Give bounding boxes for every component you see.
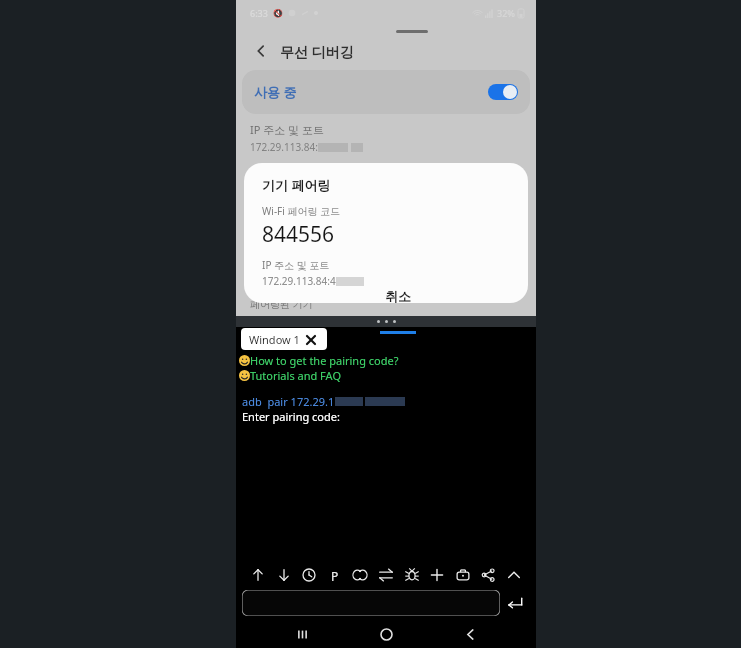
staticText: 32% — [497, 7, 515, 19]
button[interactable]: History — [299, 565, 319, 585]
button[interactable]: Swap — [376, 565, 396, 585]
staticText: IP 주소 및 포트 — [262, 258, 330, 272]
staticText: P — [331, 568, 339, 582]
staticText: 172.29.113.84:4 — [262, 274, 336, 288]
staticText: 사용 중 — [254, 83, 297, 101]
staticText: How to get the pairing code? — [250, 353, 399, 368]
staticText: Window 1 — [249, 332, 300, 347]
staticText: 취소 — [385, 288, 411, 303]
button[interactable]: Paste — [325, 565, 345, 585]
button[interactable]: 사용 중 — [242, 70, 530, 114]
staticText: Tutorials and FAQ — [250, 368, 341, 383]
button[interactable]: Recents — [284, 620, 320, 648]
staticText: 페어링된 기기 — [250, 297, 313, 311]
other: Close window — [306, 335, 316, 345]
button[interactable] — [242, 590, 500, 616]
button[interactable]: Back — [250, 40, 272, 62]
staticText: 6:33 — [250, 7, 268, 19]
button[interactable]: Back — [452, 620, 488, 648]
button[interactable]: Arrow down — [274, 565, 294, 585]
button[interactable]: Loop — [350, 565, 370, 585]
button[interactable]: Enter — [500, 590, 530, 616]
staticText: adb pair 172.29.1 — [242, 394, 335, 409]
button[interactable]: Toolbox — [453, 565, 473, 585]
staticText: IP 주소 및 포트 — [250, 122, 324, 137]
button[interactable]: Expand — [504, 565, 524, 585]
staticText: 기기 페어링 — [262, 176, 331, 194]
button[interactable]: Home — [368, 620, 404, 648]
button[interactable]: Debug — [402, 565, 422, 585]
button[interactable]: Add — [427, 565, 447, 585]
staticText: 172.29.113.84: — [250, 140, 318, 154]
staticText: 무선 디버깅 — [280, 42, 354, 61]
button[interactable]: Window 1 — [241, 328, 327, 350]
staticText: Wi-Fi 페어링 코드 — [262, 204, 341, 218]
button[interactable]: Arrow up — [248, 565, 268, 585]
staticText: 844556 — [262, 220, 335, 249]
button[interactable]: Share — [478, 565, 498, 585]
staticText: 🔇 — [273, 9, 283, 18]
button[interactable]: 취소 — [244, 288, 528, 303]
staticText: Enter pairing code: — [242, 409, 340, 424]
